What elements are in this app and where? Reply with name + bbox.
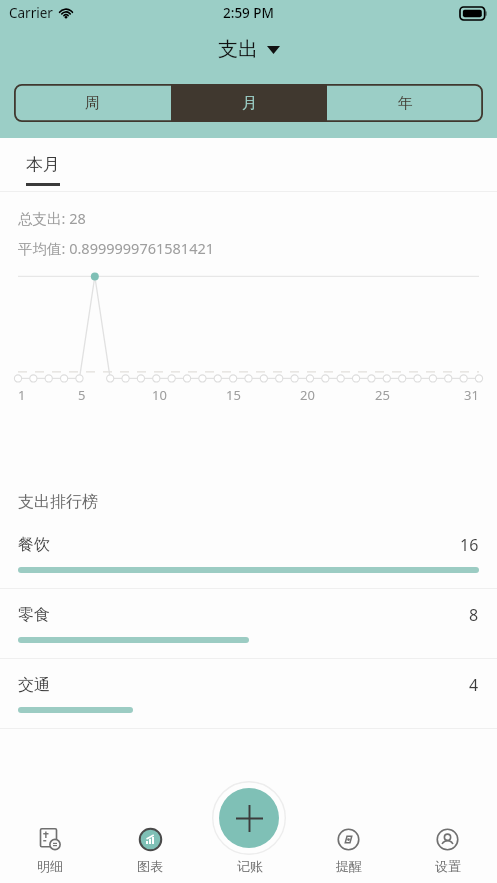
- staticText: 31: [464, 386, 479, 404]
- staticText: 10: [152, 386, 167, 404]
- staticText: 交通: [18, 675, 50, 695]
- button[interactable]: 年: [327, 84, 483, 122]
- button[interactable]: 支出 类型切换: [0, 26, 497, 72]
- staticText: 周: [85, 94, 100, 113]
- staticText: 支出: [218, 37, 258, 62]
- staticText: 平均值: 0.8999999761581421: [18, 238, 215, 258]
- staticText: 总支出: 28: [18, 208, 86, 228]
- staticText: 4: [469, 674, 479, 696]
- staticText: 16: [460, 534, 479, 556]
- staticText: 15: [226, 386, 241, 404]
- staticText: 20: [300, 386, 315, 404]
- button[interactable]: 提醒: [299, 809, 398, 883]
- button[interactable]: 交通: [0, 674, 497, 744]
- staticText: 8: [469, 604, 479, 626]
- button[interactable]: 月: [171, 84, 327, 122]
- button[interactable]: 设置: [398, 809, 497, 883]
- staticText: 月: [242, 94, 257, 113]
- staticText: 记账: [237, 858, 263, 874]
- button[interactable]: 周: [14, 84, 171, 122]
- staticText: 本月: [26, 154, 60, 175]
- button[interactable]: 记账 添加: [219, 788, 279, 848]
- staticText: 支出排行榜: [18, 492, 98, 512]
- staticText: Carrier: [9, 4, 53, 22]
- button[interactable]: 明细: [0, 809, 100, 883]
- button[interactable]: 餐饮: [0, 534, 497, 604]
- staticText: 图表: [137, 858, 163, 874]
- staticText: 1: [18, 386, 26, 404]
- staticText: 25: [375, 386, 390, 404]
- staticText: 提醒: [336, 858, 362, 874]
- staticText: 年: [398, 94, 413, 113]
- staticText: 设置: [435, 858, 461, 874]
- staticText: 餐饮: [18, 535, 50, 555]
- button[interactable]: 本月: [26, 154, 60, 186]
- staticText: 明细: [37, 858, 63, 874]
- staticText: 5: [78, 386, 86, 404]
- staticText: 零食: [18, 605, 50, 625]
- staticText: 2:59 PM: [223, 4, 274, 22]
- button[interactable]: 零食: [0, 604, 497, 674]
- button[interactable]: 图表: [100, 809, 200, 883]
